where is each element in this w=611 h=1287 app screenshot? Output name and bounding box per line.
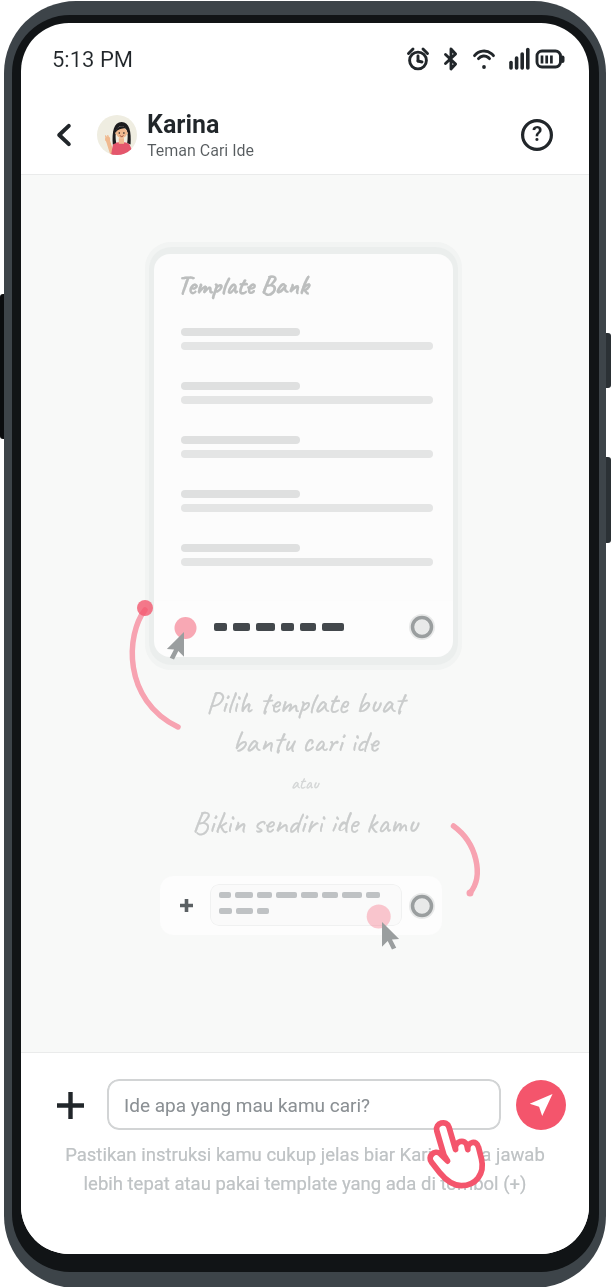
staticText: Template Bank — [177, 268, 309, 302]
button[interactable]: Back — [45, 116, 83, 154]
button[interactable]: Add — [47, 1082, 93, 1128]
staticText: Bikin sendiri ide kamu — [192, 803, 418, 842]
staticText: Pastikan instruksi kamu cukup jelas biar… — [33, 1144, 577, 1194]
staticText: ? — [532, 122, 543, 147]
staticText: Karina — [147, 110, 220, 139]
staticText: Teman Cari Ide — [147, 141, 255, 160]
button[interactable]: Ide apa yang mau kamu cari? — [107, 1079, 501, 1130]
staticText: Pilih template buat bantu cari ide — [206, 683, 404, 762]
staticText: atau — [291, 772, 319, 795]
button[interactable]: Send — [516, 1080, 566, 1130]
staticText: 5:13 PM — [52, 47, 133, 73]
staticText: Ide apa yang mau kamu cari? — [124, 1094, 371, 1116]
button[interactable]: Help — [514, 112, 560, 158]
